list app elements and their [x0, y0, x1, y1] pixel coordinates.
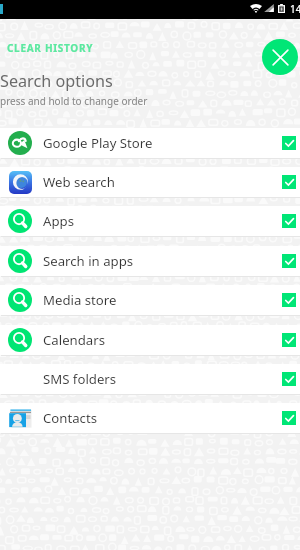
staticText: Search in apps [43, 252, 134, 270]
button[interactable]: Search in apps [0, 246, 300, 276]
button[interactable]: Web search [0, 167, 300, 197]
button[interactable]: SMS folders [0, 364, 300, 394]
staticText: Media store [43, 291, 117, 309]
button[interactable]: Google Play Store [0, 128, 300, 158]
button[interactable]: CLEAR HISTORY [7, 41, 94, 55]
staticText: SMS folders [43, 370, 117, 388]
staticText: Web search [43, 173, 115, 191]
staticText: Calendars [43, 331, 105, 349]
button[interactable]: Media store [0, 285, 300, 315]
staticText: Google Play Store [43, 134, 153, 152]
staticText: Contacts [43, 409, 98, 427]
button[interactable]: Apps [0, 206, 300, 236]
button[interactable]: Contacts [0, 403, 300, 433]
staticText: press and hold to change order [0, 94, 148, 108]
staticText: Apps [43, 212, 74, 230]
staticText: 14 [290, 2, 300, 16]
button[interactable]: Calendars [0, 325, 300, 355]
staticText: Search options [0, 70, 113, 92]
button[interactable]: Close [262, 39, 298, 75]
